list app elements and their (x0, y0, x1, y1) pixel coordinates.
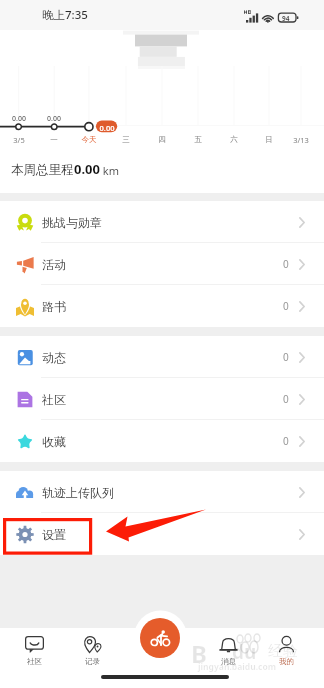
staticText: 0.00 (39, 114, 69, 124)
staticText: 0.00 (4, 114, 34, 124)
staticText: 0 (283, 434, 289, 448)
staticText: 我的 (279, 657, 294, 666)
button[interactable]: 开始骑行 (140, 618, 180, 658)
staticText: 一 (39, 135, 69, 144)
button[interactable]: 消息 (207, 628, 249, 676)
staticText: 社区 (27, 657, 42, 666)
staticText: 设置 (42, 527, 66, 542)
button[interactable]: 轨迹上传队列 (0, 471, 324, 513)
staticText: 日 (254, 135, 284, 144)
staticText: 三 (111, 135, 141, 144)
button[interactable]: 收藏 (0, 420, 324, 462)
staticText: 0.00 (94, 123, 120, 133)
staticText: km (100, 163, 120, 178)
staticText: jingyan.baidu.com (198, 661, 277, 673)
button[interactable]: 社区 (0, 378, 324, 420)
button[interactable]: 挑战与勋章 (0, 201, 324, 243)
staticText: 动态 (42, 350, 66, 365)
staticText: 今天 (74, 135, 104, 144)
staticText: 0.00 (74, 160, 100, 178)
staticText: 轨迹上传队列 (42, 485, 114, 500)
staticText: 3/13 (286, 135, 316, 145)
button[interactable]: 设置 (0, 513, 324, 555)
staticText: 3/5 (4, 135, 34, 145)
staticText: 六 (219, 135, 249, 144)
staticText: 消息 (221, 657, 236, 666)
staticText: 活动 (42, 257, 66, 272)
staticText: 社区 (42, 392, 66, 407)
button[interactable]: 动态 (0, 336, 324, 378)
staticText: 经验 (268, 642, 298, 661)
staticText: 0 (283, 350, 289, 364)
button[interactable]: 我的 (265, 628, 307, 676)
staticText: 五 (183, 135, 213, 144)
button[interactable]: 记录 (71, 628, 113, 676)
staticText: 94 (282, 14, 290, 23)
staticText: 收藏 (42, 434, 66, 449)
button[interactable]: 活动 (0, 243, 324, 285)
staticText: 路书 (42, 299, 66, 314)
staticText: 记录 (85, 657, 100, 666)
staticText: du (232, 639, 257, 665)
staticText: 0 (283, 392, 289, 406)
staticText: 本周总里程 (11, 162, 74, 178)
staticText: 0 (283, 257, 289, 271)
button[interactable]: 路书 (0, 285, 324, 327)
button[interactable]: 社区 (13, 628, 55, 676)
staticText: B (191, 637, 207, 670)
staticText: 0 (283, 299, 289, 313)
staticText: 晚上7:35 (42, 7, 88, 23)
staticText: 四 (147, 135, 177, 144)
staticText: 挑战与勋章 (42, 215, 102, 230)
